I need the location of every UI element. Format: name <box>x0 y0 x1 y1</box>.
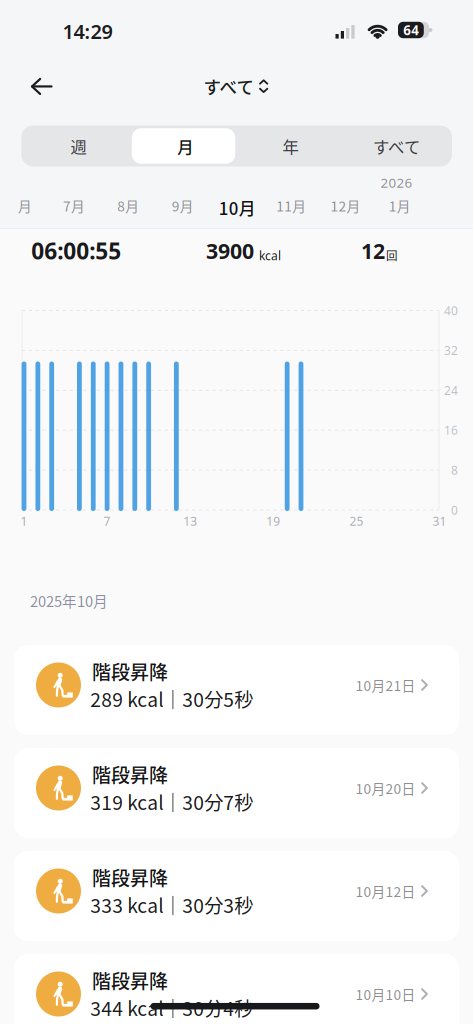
staticText: 8 <box>451 462 458 478</box>
staticText: 1月 <box>389 196 411 215</box>
staticText: 19 <box>266 513 280 529</box>
staticText: 年 <box>282 134 298 158</box>
button[interactable]: 9月 <box>172 196 194 215</box>
staticText: kcal <box>259 247 281 263</box>
staticText: 25 <box>349 513 363 529</box>
staticText: 月 <box>177 134 193 158</box>
button[interactable]: 11月 <box>276 196 306 215</box>
staticText: 11月 <box>276 196 306 215</box>
staticText: 7月 <box>63 196 85 215</box>
staticText: 階段昇降 <box>92 864 168 891</box>
button[interactable]: すべて <box>204 74 268 99</box>
staticText: 10月 <box>219 195 256 220</box>
button[interactable]: Back <box>31 78 53 95</box>
staticText: 1 <box>20 513 27 529</box>
staticText: 10月21日 <box>355 675 415 695</box>
button[interactable]: 週 <box>28 125 128 166</box>
staticText: 32 <box>444 342 458 358</box>
staticText: 16 <box>444 422 458 438</box>
button[interactable]: 階段昇降 <box>14 851 459 941</box>
staticText: 10月12日 <box>355 881 415 901</box>
staticText: 階段昇降 <box>92 761 168 788</box>
staticText: すべて <box>373 134 420 158</box>
staticText: 2026 <box>380 174 412 191</box>
staticText: 2025年10月 <box>30 590 108 611</box>
button[interactable]: 12月 <box>330 196 360 215</box>
staticText: 10月20日 <box>355 778 415 798</box>
staticText: 月 <box>18 196 32 215</box>
staticText: 40 <box>444 302 458 318</box>
staticText: 319 kcal｜30分7秒 <box>90 788 253 816</box>
staticText: 12月 <box>330 196 360 215</box>
button[interactable]: 階段昇降 <box>14 748 459 838</box>
button[interactable]: 月 <box>18 196 32 215</box>
staticText: 回 <box>386 247 397 263</box>
staticText: 階段昇降 <box>92 967 168 994</box>
staticText: 7 <box>104 513 111 529</box>
button[interactable]: 7月 <box>63 196 85 215</box>
staticText: 64 <box>403 21 419 39</box>
staticText: 3900 <box>206 237 254 265</box>
staticText: 13 <box>183 513 197 529</box>
button[interactable]: 1月 <box>389 196 411 215</box>
button[interactable]: 階段昇降 <box>14 954 459 1024</box>
staticText: 0 <box>451 502 458 518</box>
staticText: 8月 <box>117 196 139 215</box>
staticText: 週 <box>70 134 86 158</box>
staticText: 333 kcal｜30分3秒 <box>90 891 253 919</box>
button[interactable]: 年 <box>240 125 340 166</box>
button[interactable]: 階段昇降 <box>14 645 459 735</box>
staticText: 289 kcal｜30分5秒 <box>90 685 253 713</box>
staticText: 12 <box>361 237 385 265</box>
staticText: 階段昇降 <box>92 658 168 685</box>
staticText: 14:29 <box>63 18 113 45</box>
button[interactable]: 8月 <box>117 196 139 215</box>
staticText: 06:00:55 <box>31 236 121 266</box>
button[interactable]: 10月 <box>219 195 256 220</box>
staticText: 344 kcal｜30分4秒 <box>90 994 253 1022</box>
staticText: すべて <box>204 74 254 99</box>
staticText: 10月10日 <box>355 984 415 1004</box>
staticText: 9月 <box>172 196 194 215</box>
button[interactable]: 月 <box>135 125 235 166</box>
staticText: 31 <box>432 513 446 529</box>
staticText: 24 <box>444 382 458 398</box>
button[interactable]: すべて <box>346 125 446 166</box>
